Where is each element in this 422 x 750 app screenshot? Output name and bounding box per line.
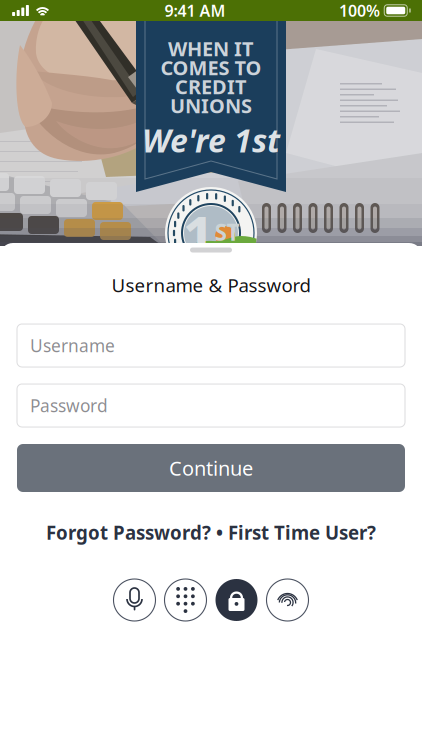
staticText: Forgot Password? — [46, 520, 211, 545]
button[interactable]: Continue — [17, 444, 405, 492]
staticText: 9:41 AM — [164, 0, 225, 21]
staticText: UNIONS — [170, 92, 252, 119]
staticText: First Time User? — [228, 520, 376, 545]
button[interactable]: First Time User? — [228, 520, 376, 545]
staticText: ST — [214, 217, 239, 247]
button[interactable]: Password login — [215, 579, 257, 621]
staticText: 100% — [339, 0, 380, 21]
staticText: Continue — [169, 455, 253, 481]
staticText: WHEN IT — [168, 35, 254, 62]
staticText: Username & Password — [111, 273, 310, 297]
button[interactable]: Voice login — [113, 579, 155, 621]
staticText: 1 — [182, 198, 214, 272]
button[interactable]: Fingerprint login — [266, 579, 308, 621]
staticText: COMES TO — [160, 54, 261, 81]
button[interactable]: Keypad login — [164, 579, 206, 621]
staticText: We're 1st — [142, 119, 280, 161]
staticText: Username — [30, 334, 115, 357]
button[interactable]: Forgot Password? — [46, 520, 211, 545]
staticText: • — [211, 520, 228, 545]
staticText: CREDIT — [175, 73, 247, 100]
staticText: Password — [30, 394, 108, 417]
